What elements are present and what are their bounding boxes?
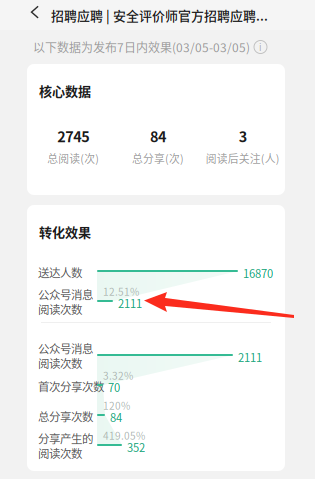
staticText: 84	[110, 409, 122, 425]
staticText: 2745	[57, 125, 89, 146]
staticText: 招聘应聘 | 安全评价师官方招聘应聘...	[51, 6, 268, 24]
staticText: 转化效果	[39, 222, 91, 241]
staticText: 核心数据	[39, 81, 91, 100]
staticText: 2111	[118, 295, 142, 311]
staticText: 首次分享次数	[38, 378, 104, 395]
staticText: 分享产生的	[38, 430, 93, 447]
staticText: 2111	[238, 349, 262, 365]
staticText: 120%	[103, 398, 130, 413]
staticText: 419.05%	[103, 428, 145, 443]
staticText: 3	[239, 125, 247, 146]
staticText: 总分享(次)	[132, 150, 184, 166]
staticText: 送达人数	[38, 264, 82, 281]
staticText: 阅读次数	[38, 445, 82, 461]
staticText: 12.51%	[103, 284, 139, 299]
staticText: 84	[150, 125, 166, 146]
staticText: 70	[108, 379, 120, 395]
staticText: 以下数据为发布7日内效果(03/05-03/05)	[33, 38, 250, 56]
staticText: 16870	[243, 265, 273, 281]
staticText: 公众号消息	[38, 286, 93, 303]
staticText: 总分享次数	[38, 408, 93, 425]
staticText: 阅读次数	[38, 301, 82, 317]
staticText: i	[259, 40, 262, 54]
button[interactable]: Back	[20, 0, 42, 30]
staticText: 总阅读(次)	[47, 150, 99, 166]
staticText: 阅读次数	[38, 355, 82, 371]
staticText: 阅读后关注(人)	[206, 150, 280, 166]
staticText: 3.32%	[103, 368, 133, 383]
staticText: 352	[127, 439, 145, 455]
staticText: 公众号消息	[38, 340, 93, 357]
